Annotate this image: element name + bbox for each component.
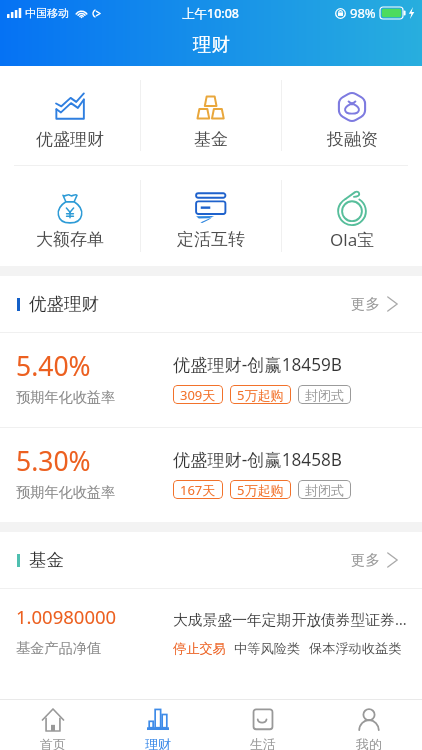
- staticText: 保本浮动收益类: [309, 640, 402, 657]
- button[interactable]: 理财: [105, 700, 210, 750]
- staticText: 优盛理财-创赢18458B: [173, 448, 342, 471]
- staticText: 5万起购: [237, 386, 284, 404]
- button[interactable]: 优盛理财: [0, 66, 140, 165]
- staticText: 中国移动: [25, 6, 69, 20]
- staticText: 5.40%: [16, 348, 91, 384]
- staticText: 1.00980000: [16, 604, 117, 629]
- staticText: 封闭式: [305, 387, 344, 403]
- staticText: 首页: [40, 736, 66, 750]
- staticText: 309天: [180, 386, 216, 404]
- staticText: 停止交易: [173, 640, 226, 657]
- button[interactable]: 生活: [210, 700, 316, 750]
- staticText: 更多: [351, 551, 380, 569]
- button[interactable]: 基金: [0, 532, 422, 588]
- staticText: 优盛理财: [29, 293, 99, 315]
- staticText: 预期年化收益率: [16, 483, 116, 501]
- staticText: 大额存单: [36, 229, 104, 250]
- staticText: 投融资: [327, 129, 378, 150]
- button[interactable]: 优盛理财: [0, 276, 422, 332]
- staticText: 167天: [180, 481, 216, 499]
- button[interactable]: 5.30%: [0, 428, 422, 522]
- staticText: 大成景盛一年定期开放债券型证券…: [173, 609, 407, 629]
- staticText: 5.30%: [16, 443, 91, 479]
- button[interactable]: Ola宝: [282, 166, 422, 266]
- staticText: 更多: [351, 295, 380, 313]
- button[interactable]: 5.40%: [0, 333, 422, 427]
- staticText: 定活互转: [177, 229, 245, 250]
- staticText: 优盛理财: [36, 129, 104, 150]
- staticText: 中等风险类: [234, 640, 300, 657]
- staticText: Ola宝: [330, 228, 375, 251]
- staticText: 5万起购: [237, 481, 284, 499]
- button[interactable]: 我的: [316, 700, 422, 750]
- staticText: 基金: [194, 129, 228, 150]
- staticText: 98%: [350, 4, 376, 22]
- button[interactable]: 投融资: [282, 66, 422, 165]
- button[interactable]: 首页: [0, 700, 105, 750]
- staticText: 基金: [29, 549, 64, 571]
- other: 更多: [387, 552, 398, 568]
- button[interactable]: 1.00980000: [0, 589, 422, 683]
- staticText: 生活: [250, 736, 276, 750]
- staticText: 预期年化收益率: [16, 388, 116, 406]
- other: 更多: [387, 296, 398, 312]
- staticText: 基金产品净值: [16, 639, 102, 657]
- staticText: 封闭式: [305, 482, 344, 498]
- button[interactable]: 大额存单: [0, 166, 140, 266]
- staticText: 上午10:08: [182, 5, 240, 22]
- staticText: 优盛理财-创赢18459B: [173, 353, 342, 376]
- button[interactable]: 基金: [141, 66, 281, 165]
- staticText: 理财: [145, 736, 171, 750]
- staticText: 理财: [193, 33, 230, 56]
- button[interactable]: 定活互转: [141, 166, 281, 266]
- staticText: 我的: [356, 736, 382, 750]
